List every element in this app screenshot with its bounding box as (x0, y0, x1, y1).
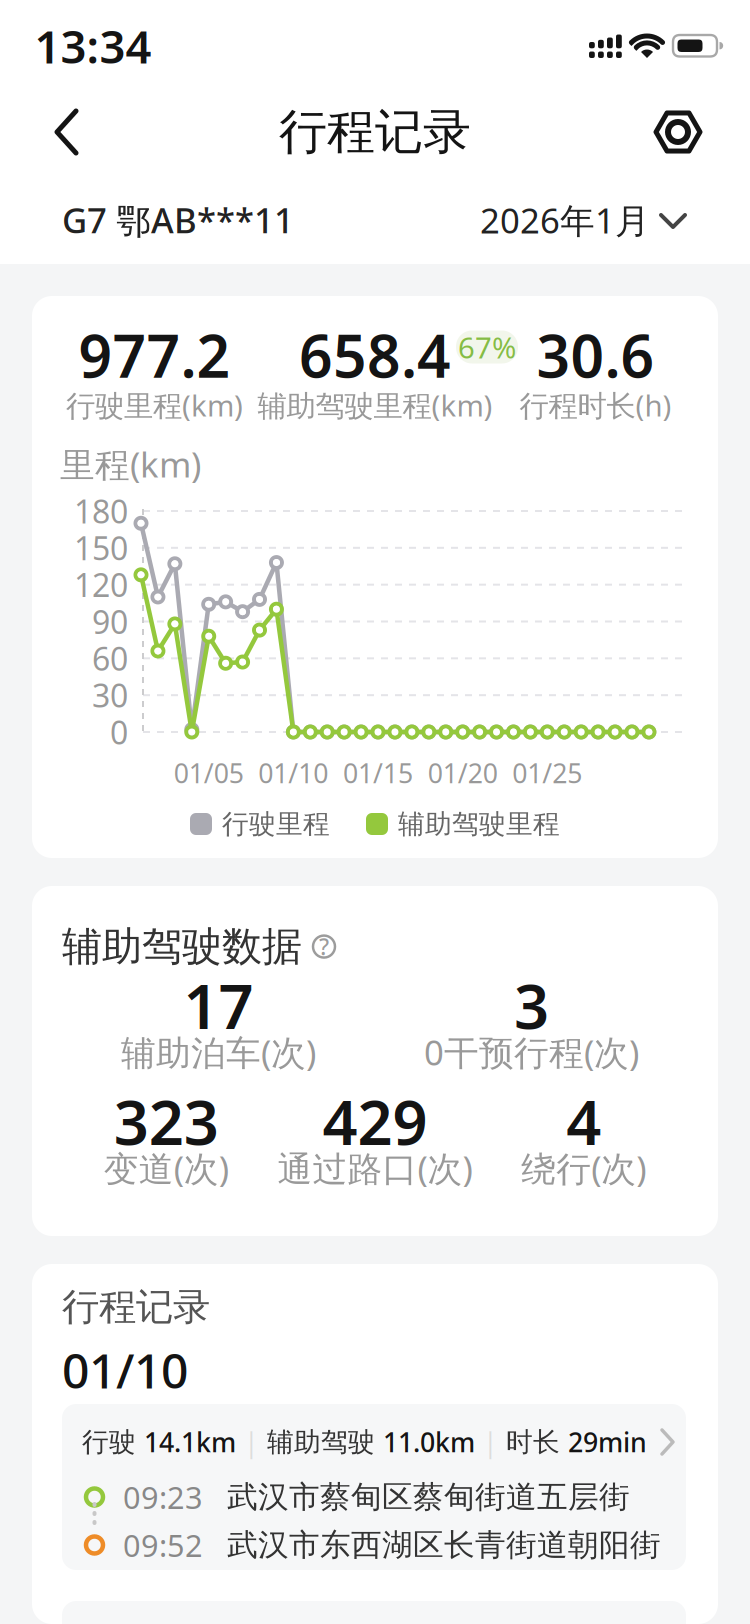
staticText: 里程(km) (60, 441, 201, 487)
staticText: 行驶里程 (222, 808, 330, 840)
staticText: 行程时长(h) (519, 385, 671, 424)
staticText: 30.6 (536, 316, 654, 394)
staticText: 0干预行程(次) (424, 1029, 639, 1075)
staticText: 辅助驾驶 (267, 1426, 383, 1458)
staticText: 绕行(次) (521, 1145, 646, 1191)
staticText: 17 (183, 964, 253, 1046)
staticText: 01/05 (174, 755, 244, 791)
staticText: 09:23 (123, 1477, 203, 1517)
button[interactable]: G7 鄂AB***11 (0, 176, 400, 264)
staticText: 323 (114, 1080, 219, 1162)
staticText: 行程记录 (279, 102, 471, 161)
button[interactable] (0, 88, 100, 176)
staticText: 09:52 (123, 1525, 203, 1565)
staticText: 2026年1月 (480, 197, 650, 243)
staticText: 67% (458, 327, 516, 366)
staticText: 429 (322, 1080, 427, 1162)
staticText: 通过路口(次) (277, 1145, 472, 1191)
staticText: 90 (92, 600, 128, 643)
staticText: ? (319, 931, 329, 962)
staticText: 60 (92, 637, 128, 680)
staticText: 180 (74, 490, 128, 532)
staticText: 01/25 (512, 755, 582, 791)
staticText: | (483, 1424, 498, 1460)
staticText: 武汉市蔡甸区蔡甸街道五层街 (227, 1478, 630, 1516)
staticText: 4 (566, 1080, 601, 1162)
staticText: G7 鄂AB***11 (62, 197, 294, 243)
staticText: 3 (514, 964, 549, 1046)
button[interactable]: 行驶 (62, 1404, 686, 1570)
button[interactable]: 2026年1月 (0, 176, 750, 264)
staticText: 辅助驾驶数据 (62, 922, 302, 971)
staticText: 0 (110, 711, 128, 753)
staticText: 977.2 (78, 316, 230, 394)
staticText: 30 (92, 674, 128, 716)
staticText: 辅助泊车(次) (121, 1029, 316, 1075)
staticText: 变道(次) (104, 1145, 229, 1191)
staticText: 01/10 (62, 1338, 188, 1402)
staticText: 01/10 (258, 755, 328, 791)
staticText: 29min (568, 1424, 647, 1460)
staticText: 13:34 (34, 16, 151, 76)
button[interactable] (0, 88, 750, 176)
staticText: 辅助驾驶里程 (398, 808, 560, 840)
staticText: 11.0km (383, 1424, 475, 1460)
staticText: 150 (74, 527, 128, 569)
staticText: 01/20 (428, 755, 498, 791)
staticText: 辅助驾驶里程(km) (257, 385, 492, 424)
staticText: | (244, 1424, 259, 1460)
staticText: 时长 (506, 1426, 568, 1458)
button[interactable]: ? (312, 935, 336, 959)
staticText: 01/15 (343, 755, 413, 791)
staticText: 行驶 (82, 1426, 144, 1458)
staticText: 武汉市东西湖区长青街道朝阳街 (227, 1526, 661, 1564)
staticText: 行程记录 (62, 1284, 210, 1330)
staticText: 658.4 (299, 316, 451, 394)
staticText: 行驶里程(km) (66, 385, 243, 424)
staticText: 14.1km (144, 1424, 236, 1460)
staticText: 120 (74, 563, 128, 606)
